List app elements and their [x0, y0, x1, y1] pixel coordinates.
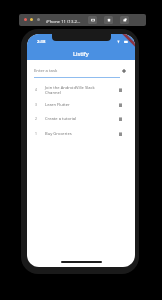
button[interactable]: Add task — [120, 68, 135, 80]
button[interactable]: 2 — [27, 111, 135, 126]
staticText: Enter a task — [34, 68, 58, 74]
staticText: Listify — [73, 50, 89, 58]
button[interactable]: 3 — [27, 97, 135, 112]
other: Delete — [117, 115, 124, 122]
staticText: 1 — [34, 131, 38, 136]
staticText: Join the AndroidVille Slack Channel — [45, 85, 98, 95]
staticText: 4 — [34, 87, 38, 92]
staticText: 2 — [34, 116, 38, 121]
staticText: 3 — [34, 102, 38, 107]
button[interactable]: Screenshot — [88, 16, 97, 24]
other: Delete — [117, 101, 124, 108]
other: Delete — [117, 130, 124, 137]
button[interactable]: 1 — [27, 126, 135, 141]
staticText: Learn Flutter — [45, 102, 98, 108]
staticText: 2:38 — [37, 39, 46, 45]
staticText: Create a tutorial — [45, 116, 98, 122]
staticText: iPhone 11 (13.2... — [46, 18, 81, 24]
button[interactable]: Home — [104, 16, 113, 24]
button[interactable]: 4 — [27, 82, 135, 97]
button[interactable]: Share — [120, 16, 129, 24]
other: Delete — [117, 86, 124, 93]
staticText: Buy Groceries — [45, 131, 98, 137]
